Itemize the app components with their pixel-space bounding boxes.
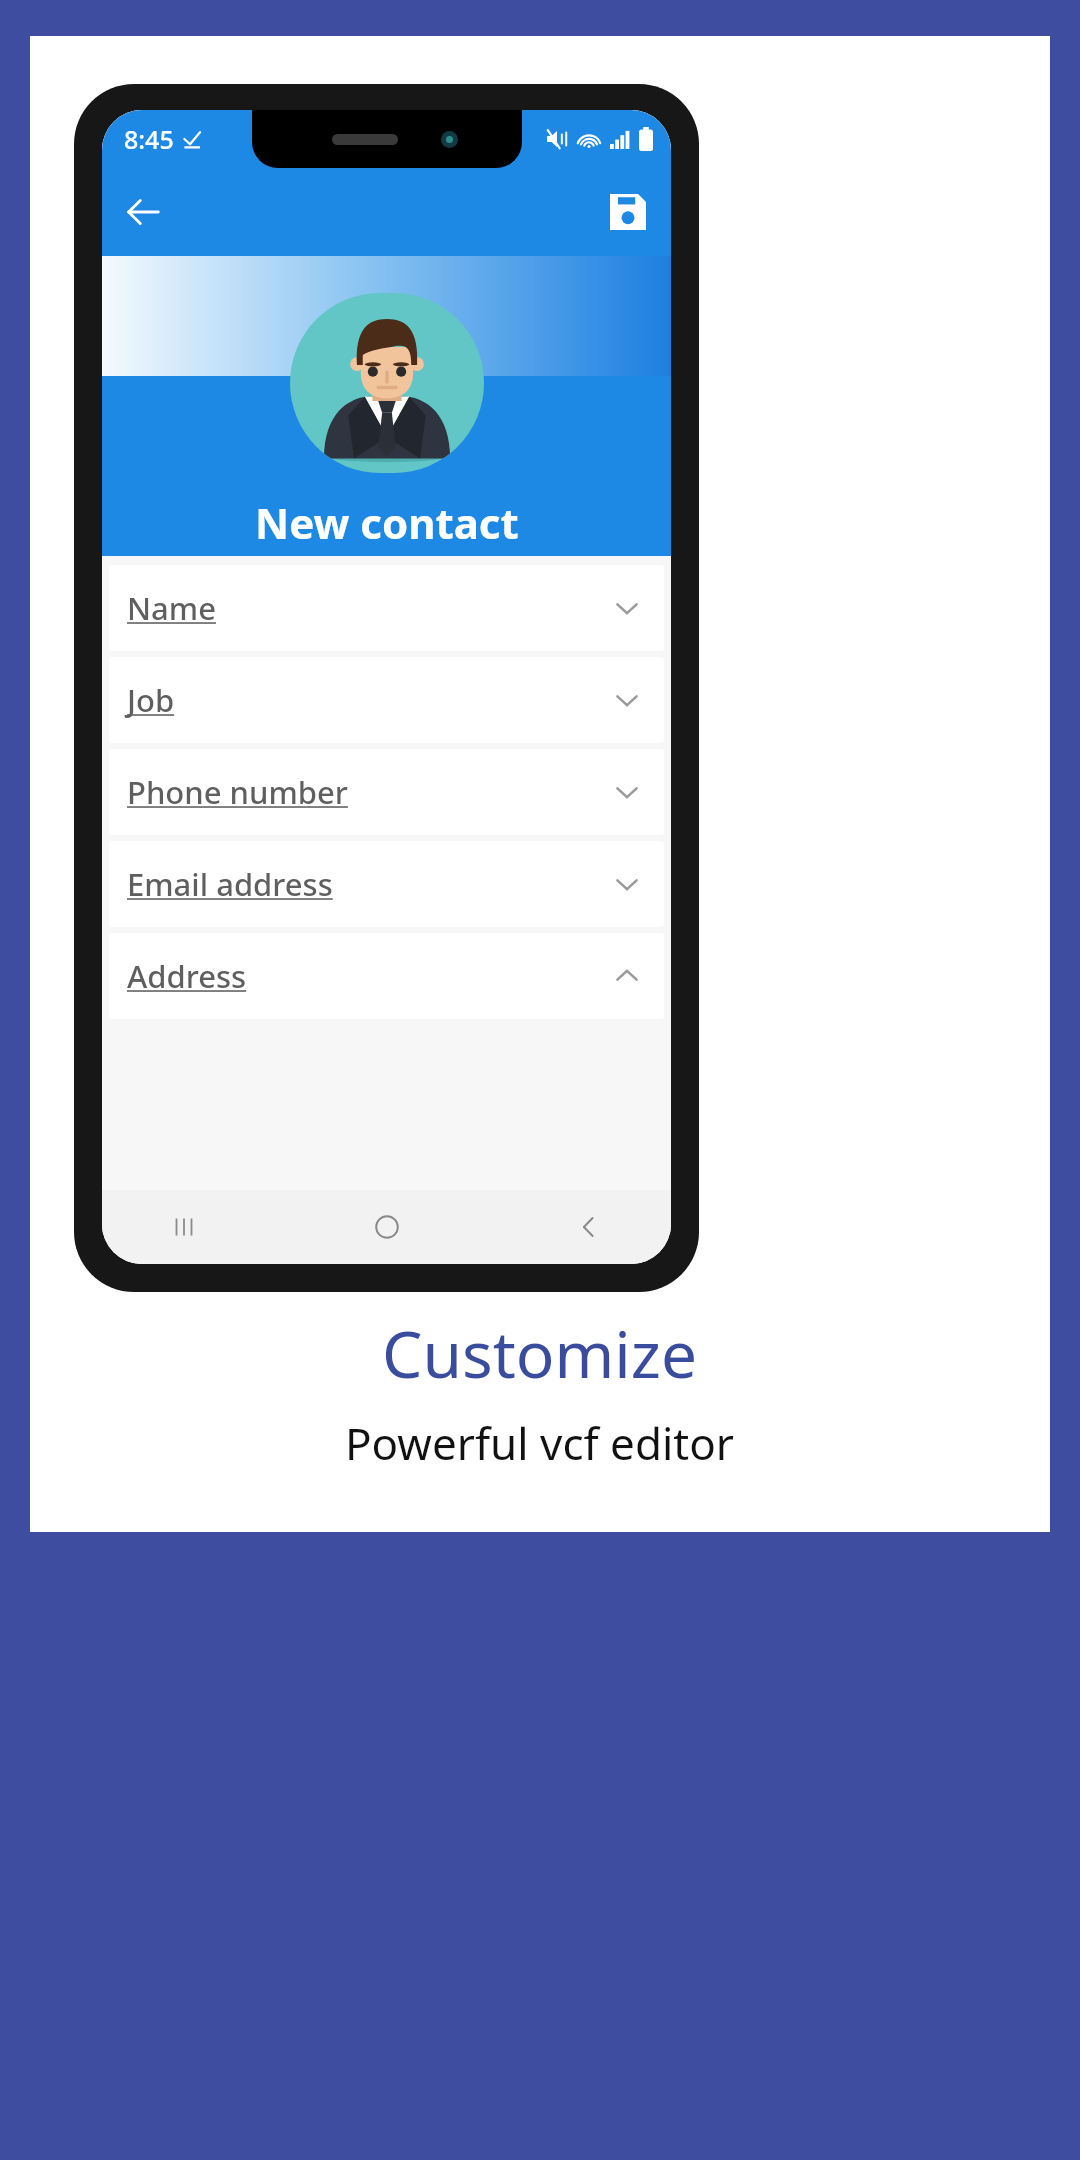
staticText: Phone number	[127, 771, 348, 813]
button[interactable]: Home	[361, 1201, 413, 1253]
button[interactable]: Email address	[109, 841, 664, 927]
staticText: Address	[127, 955, 247, 997]
button[interactable]: Back	[114, 183, 172, 241]
staticText: Powerful vcf editor	[345, 1413, 735, 1473]
staticText: Customize	[382, 1310, 698, 1397]
button[interactable]: Name	[109, 565, 664, 651]
staticText: New contact	[255, 494, 519, 551]
button[interactable]: Back	[563, 1201, 615, 1253]
staticText: Job	[127, 679, 175, 721]
button[interactable]: Job	[109, 657, 664, 743]
staticText: Email address	[127, 863, 333, 905]
staticText: 8:45	[124, 122, 174, 156]
button[interactable]: Recent apps	[158, 1201, 210, 1253]
button[interactable]: Address	[109, 933, 664, 1019]
button[interactable]: Save	[599, 183, 657, 241]
button[interactable]: Phone number	[109, 749, 664, 835]
staticText: Name	[127, 587, 216, 629]
